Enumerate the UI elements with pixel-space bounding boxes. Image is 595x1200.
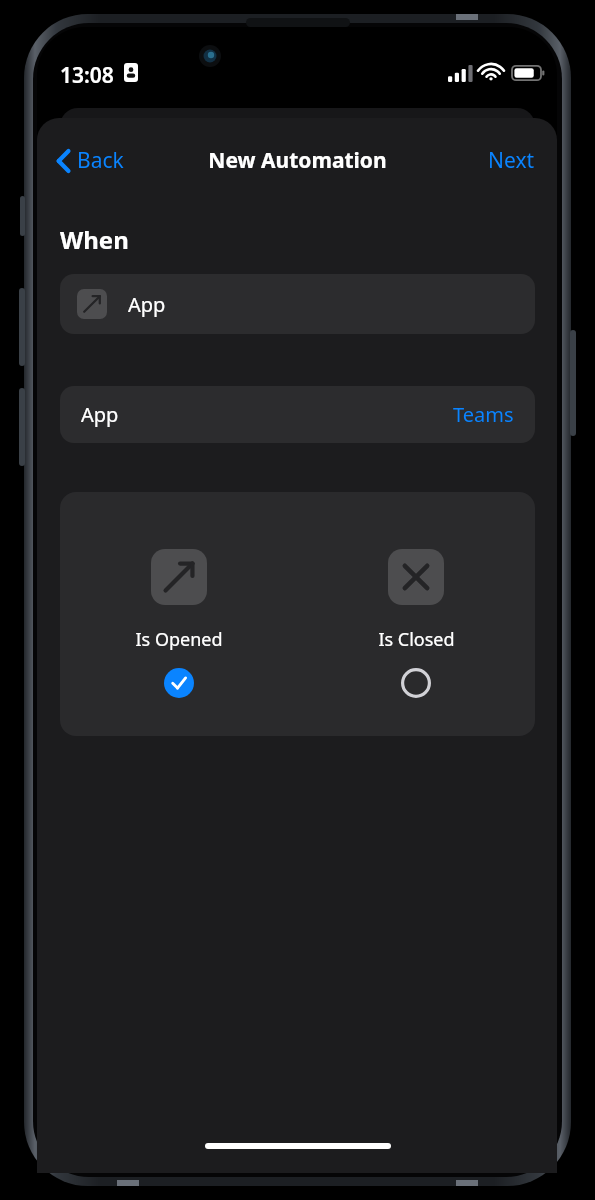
- staticText: When: [60, 223, 129, 256]
- staticText: 13:08: [60, 61, 114, 90]
- button[interactable]: Is Closed: [297, 492, 535, 736]
- button[interactable]: Is Opened: [60, 492, 297, 736]
- staticText: App: [81, 401, 119, 428]
- button[interactable]: App: [60, 386, 535, 443]
- button[interactable]: Next: [480, 140, 543, 181]
- button[interactable]: App: [60, 274, 535, 334]
- staticText: Next: [488, 146, 535, 175]
- staticText: New Automation: [208, 146, 387, 175]
- staticText: Is Opened: [135, 627, 223, 652]
- staticText: Teams: [453, 401, 514, 428]
- staticText: App: [128, 291, 166, 318]
- button[interactable]: Back: [51, 140, 130, 181]
- staticText: Is Closed: [378, 627, 455, 652]
- staticText: Back: [77, 146, 124, 175]
